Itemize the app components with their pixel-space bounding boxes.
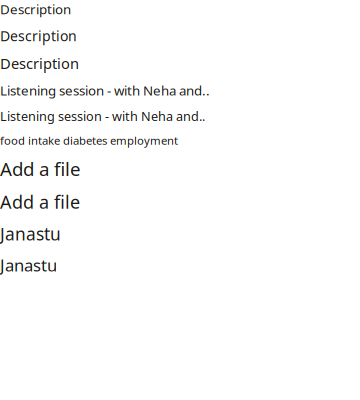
staticText: food intake diabetes employment [0,133,178,148]
staticText: Listening session - with Neha and.. [0,107,205,125]
staticText: Janastu [0,254,57,276]
staticText: Add a file [0,156,81,181]
staticText: Listening session - with Neha and.. [0,81,210,99]
staticText: Janastu [0,222,61,246]
staticText: Description [0,53,79,73]
staticText: Add a file [0,189,80,214]
staticText: Description [0,26,77,45]
staticText: Description [0,0,71,18]
